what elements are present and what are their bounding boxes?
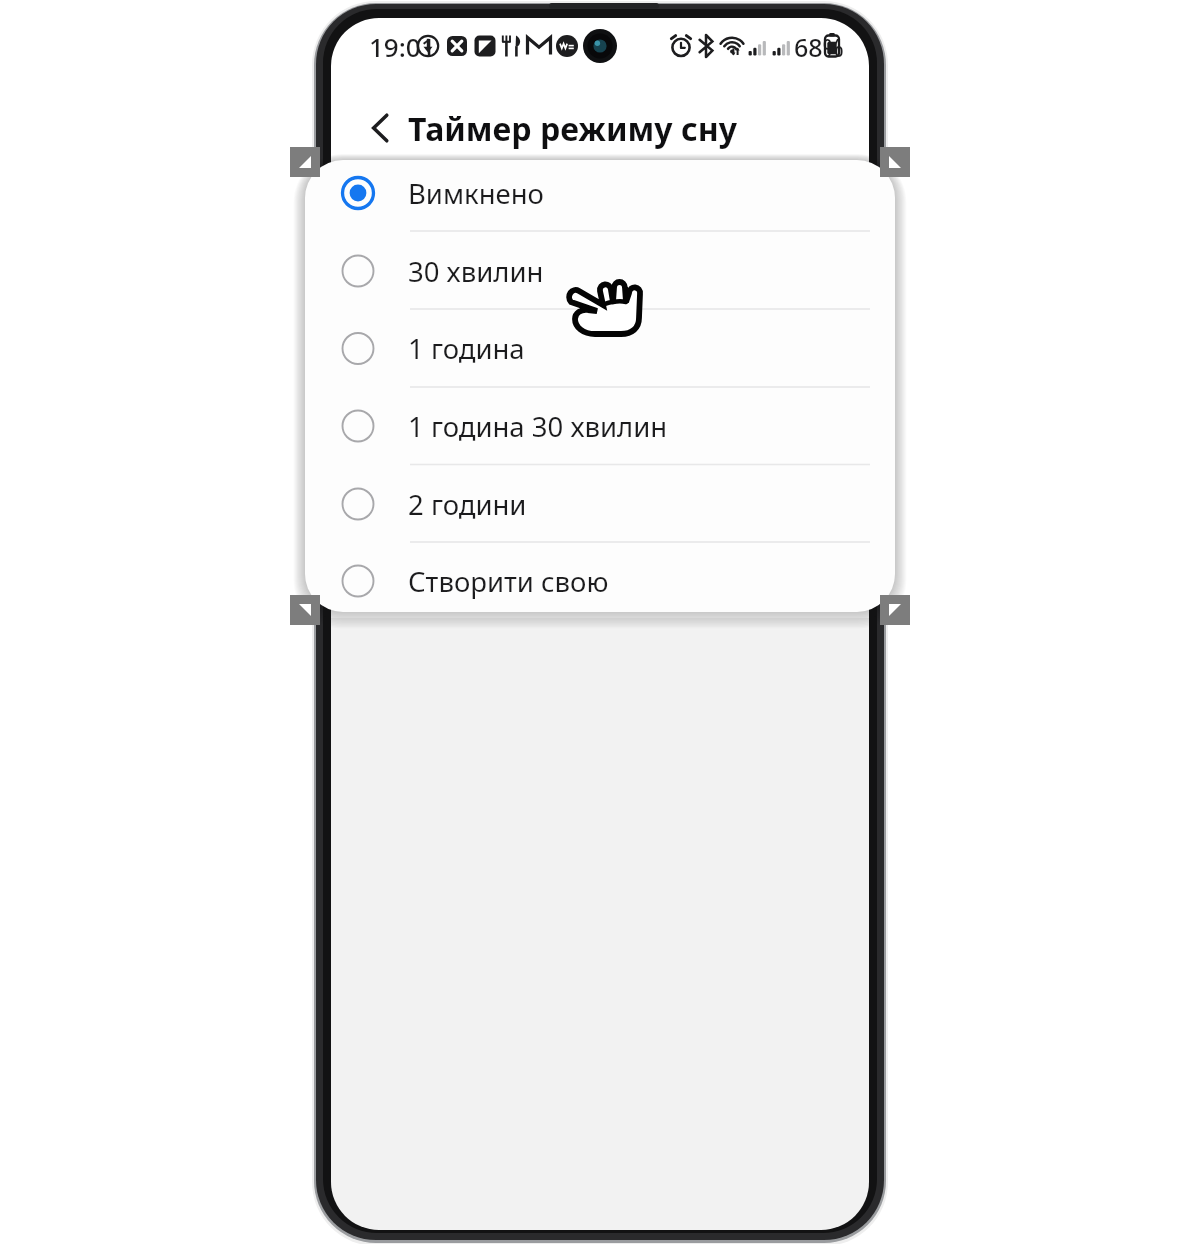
staticText: Таймер режиму сну xyxy=(408,107,737,149)
staticText: Вимкнено xyxy=(408,175,544,211)
staticText: 30 хвилин xyxy=(408,253,544,289)
button[interactable]: 1 година 30 хвилин xyxy=(305,387,895,465)
button[interactable]: 2 години xyxy=(305,465,895,543)
staticText: 2 години xyxy=(408,486,527,522)
button[interactable]: 30 хвилин xyxy=(305,232,895,310)
staticText: 1 година xyxy=(408,330,525,366)
button[interactable]: Back xyxy=(356,104,404,152)
staticText: 1 година 30 хвилин xyxy=(408,408,668,444)
button[interactable]: 1 година xyxy=(305,310,895,388)
button[interactable]: Вимкнено xyxy=(305,154,895,232)
staticText: Створити свою xyxy=(408,563,609,599)
staticText: 68% xyxy=(794,30,844,63)
button[interactable]: Створити свою xyxy=(305,542,895,620)
staticText: 19:01 xyxy=(369,29,436,63)
